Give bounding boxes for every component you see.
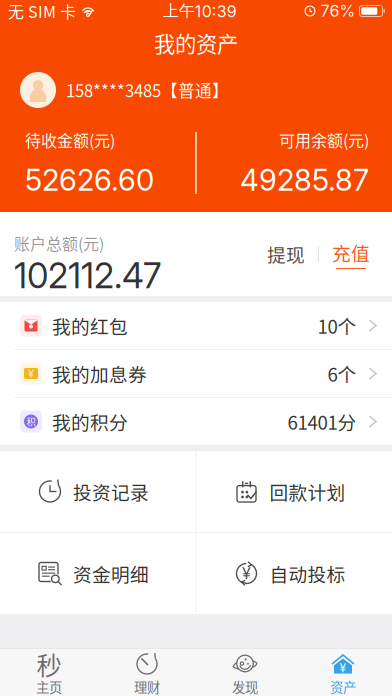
staticText: 76% (320, 1, 355, 21)
staticText: 61401分 (287, 408, 356, 435)
button[interactable]: 理财 (98, 649, 196, 696)
staticText: 秒 (36, 646, 61, 682)
button[interactable]: 我的红包 (0, 302, 392, 349)
staticText: 49285.87 (240, 162, 369, 198)
button[interactable]: 资金明细 (0, 533, 195, 614)
staticText: 充值 (332, 239, 370, 266)
staticText: 我的积分 (52, 408, 128, 435)
staticText: ¥ (242, 564, 251, 583)
button[interactable]: 回款计划 (196, 451, 392, 532)
staticText: 6个 (327, 360, 356, 387)
staticText: 发现 (232, 677, 258, 696)
staticText: ¥ (339, 661, 346, 675)
button[interactable]: 充值 (322, 231, 380, 277)
staticText: 无 SIM 卡 (8, 0, 76, 23)
staticText: 102112.47 (14, 255, 161, 296)
staticText: 我的资产 (154, 28, 238, 58)
staticText: 待收金额(元) (25, 128, 115, 151)
button[interactable]: ¥ (0, 350, 392, 397)
button[interactable]: ¥ (196, 533, 392, 614)
staticText: 回款计划 (269, 478, 345, 505)
button[interactable]: 提现 (257, 231, 315, 276)
staticText: 主页 (36, 677, 62, 696)
button[interactable]: 发现 (196, 649, 294, 696)
staticText: 账户总额(元) (14, 231, 104, 255)
staticText: 投资记录 (73, 478, 149, 505)
button[interactable]: ¥ (294, 649, 392, 696)
staticText: 提现 (267, 240, 305, 267)
staticText: ¥ (28, 367, 34, 380)
staticText: 积 (26, 415, 35, 428)
button[interactable]: 投资记录 (0, 451, 195, 532)
staticText: 52626.60 (25, 162, 154, 198)
staticText: 理财 (134, 677, 160, 696)
staticText: 10个 (317, 312, 356, 339)
staticText: 资金明细 (73, 560, 149, 587)
button[interactable]: 秒 (0, 649, 98, 696)
staticText: 资产 (330, 677, 356, 696)
staticText: 我的加息券 (52, 360, 147, 387)
staticText: 可用余额(元) (279, 128, 369, 151)
staticText: 上午10:39 (163, 1, 237, 21)
staticText: 自动投标 (269, 560, 345, 587)
button[interactable]: 积 (0, 398, 392, 445)
staticText: 我的红包 (52, 312, 128, 339)
staticText: 158****3485【普通】 (66, 78, 229, 102)
